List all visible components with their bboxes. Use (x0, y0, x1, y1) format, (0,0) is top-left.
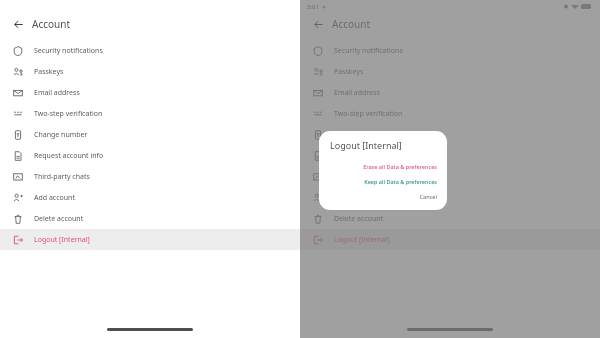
button[interactable]: Logout [Internal] (0, 229, 300, 250)
staticText: Email address (34, 88, 80, 98)
button[interactable]: Erase all Data & preferences (319, 159, 447, 174)
staticText: Security notifications (34, 46, 103, 56)
staticText: Two-step verification (34, 109, 103, 119)
staticText: Keep all Data & preferences (364, 178, 437, 185)
button[interactable]: Third-party chats (0, 166, 300, 187)
staticText: Third-party chats (34, 172, 90, 182)
button[interactable]: Request account info (0, 145, 300, 166)
staticText: Cancel (419, 193, 437, 200)
button[interactable]: Request account info (300, 145, 600, 166)
staticText: Logout [Internal] (34, 235, 90, 245)
staticText: Logout [Internal] (330, 139, 402, 151)
button[interactable]: Two-step verification (0, 103, 300, 124)
button[interactable]: Security notifications (0, 40, 300, 61)
button[interactable]: Security notifications (300, 40, 600, 61)
staticText: Third-party chats (334, 172, 390, 182)
staticText: 3:01 (307, 3, 319, 11)
button[interactable]: Change number (300, 124, 600, 145)
staticText: Email address (334, 88, 380, 98)
button[interactable]: Third-party chats (300, 166, 600, 187)
staticText: Account (32, 17, 71, 31)
button[interactable]: Back (10, 16, 26, 32)
staticText: Security notifications (334, 46, 403, 56)
staticText: Add account (34, 193, 75, 203)
button[interactable]: Passkeys (300, 61, 600, 82)
button[interactable]: Add account (0, 187, 300, 208)
staticText: Delete account (34, 214, 84, 224)
button[interactable]: Passkeys (0, 61, 300, 82)
staticText: Delete account (334, 214, 384, 224)
staticText: Change number (334, 130, 388, 140)
staticText: Change number (34, 130, 88, 140)
staticText: Two-step verification (334, 109, 403, 119)
button[interactable]: Logout [Internal] (300, 229, 600, 250)
staticText: Passkeys (334, 67, 364, 77)
button[interactable]: Keep all Data & preferences (319, 174, 447, 189)
staticText: Passkeys (34, 67, 64, 77)
staticText: Logout [Internal] (334, 235, 390, 245)
staticText: Account (332, 17, 371, 31)
button[interactable]: Email address (0, 82, 300, 103)
button[interactable]: Delete account (300, 208, 600, 229)
button[interactable]: Add account (300, 187, 600, 208)
button[interactable]: Delete account (0, 208, 300, 229)
button[interactable]: Cancel (319, 189, 447, 204)
button[interactable]: Change number (0, 124, 300, 145)
button[interactable]: Two-step verification (300, 103, 600, 124)
button[interactable]: Back (310, 16, 326, 32)
staticText: Request account info (34, 151, 104, 161)
staticText: Erase all Data & preferences (363, 163, 437, 170)
button[interactable]: Email address (300, 82, 600, 103)
